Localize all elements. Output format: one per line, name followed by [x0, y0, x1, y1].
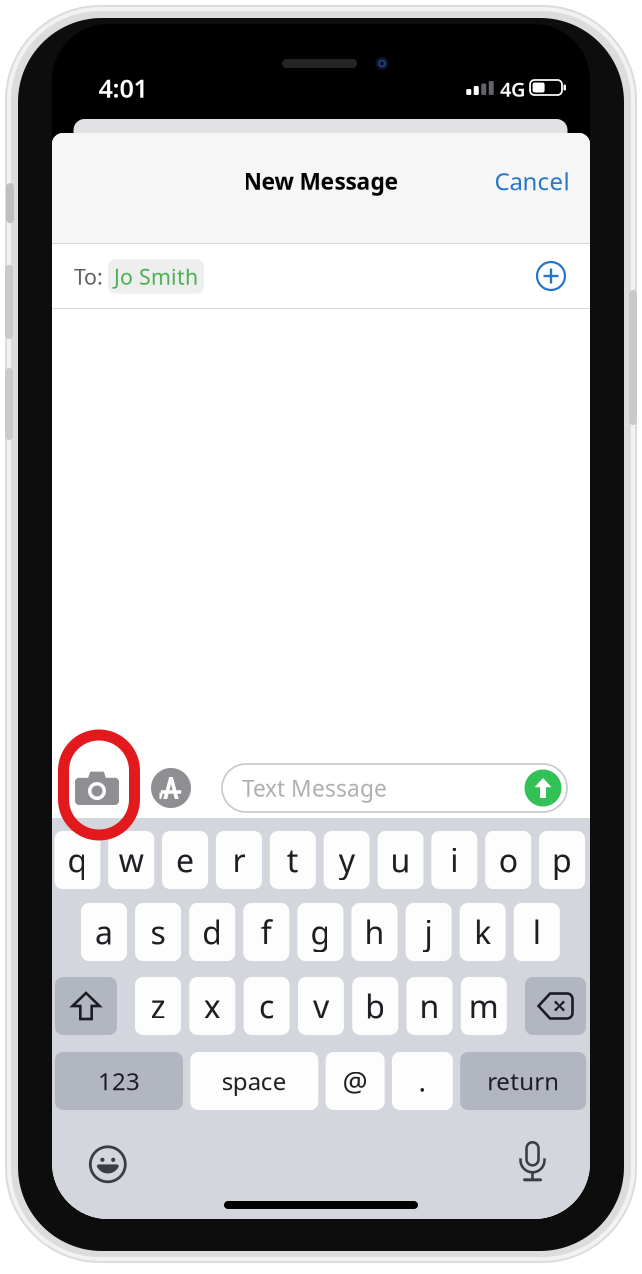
button[interactable]: Emoji keyboard — [82, 1138, 134, 1190]
button[interactable]: o — [485, 831, 531, 889]
button[interactable]: Delete — [525, 977, 586, 1035]
button[interactable]: z — [135, 977, 181, 1035]
button[interactable]: Dictation — [506, 1138, 558, 1190]
staticText: q — [67, 839, 87, 881]
button[interactable]: m — [461, 977, 507, 1035]
staticText: o — [499, 839, 518, 881]
button[interactable]: return — [460, 1052, 586, 1110]
button[interactable]: f — [243, 903, 289, 961]
button[interactable]: a — [81, 903, 127, 961]
button[interactable]: q — [54, 831, 100, 889]
staticText: x — [204, 985, 221, 1027]
button[interactable]: x — [189, 977, 235, 1035]
button[interactable]: k — [460, 903, 506, 961]
button[interactable]: Add contact — [525, 250, 577, 302]
staticText: return — [487, 1065, 559, 1097]
button[interactable]: s — [135, 903, 181, 961]
staticText: New Message — [243, 166, 398, 196]
button[interactable]: b — [352, 977, 398, 1035]
button[interactable]: e — [162, 831, 208, 889]
staticText: h — [364, 911, 384, 953]
staticText: p — [552, 839, 572, 881]
staticText: Cancel — [494, 165, 569, 197]
staticText: v — [313, 985, 329, 1027]
button[interactable]: r — [216, 831, 262, 889]
staticText: z — [150, 985, 165, 1027]
button[interactable]: . — [392, 1052, 453, 1110]
staticText: e — [176, 839, 194, 881]
button[interactable]: Camera — [67, 760, 127, 816]
staticText: f — [261, 911, 272, 953]
button[interactable]: 123 — [55, 1052, 183, 1110]
staticText: 123 — [98, 1065, 140, 1097]
staticText: n — [419, 985, 439, 1027]
staticText: g — [310, 911, 330, 953]
staticText: c — [259, 985, 274, 1027]
staticText: t — [287, 839, 299, 881]
staticText: 4:01 — [98, 71, 147, 105]
button[interactable]: Shift — [55, 977, 117, 1035]
button[interactable]: h — [351, 903, 397, 961]
staticText: . — [418, 1062, 426, 1100]
staticText: i — [450, 839, 458, 881]
button[interactable]: Send — [520, 765, 566, 811]
staticText: To: — [74, 262, 103, 291]
button[interactable]: space — [190, 1052, 318, 1110]
staticText: b — [365, 985, 385, 1027]
staticText: Jo Smith — [114, 262, 198, 291]
button[interactable]: y — [324, 831, 370, 889]
staticText: l — [533, 911, 541, 953]
button[interactable]: p — [539, 831, 585, 889]
button[interactable]: j — [406, 903, 452, 961]
staticText: r — [232, 839, 245, 881]
button[interactable]: l — [514, 903, 560, 961]
button[interactable]: i — [431, 831, 477, 889]
staticText: u — [390, 839, 410, 881]
staticText: y — [339, 839, 355, 881]
staticText: d — [202, 911, 222, 953]
staticText: k — [474, 911, 491, 953]
staticText: w — [119, 839, 144, 881]
staticText: @ — [343, 1062, 368, 1100]
staticText: j — [425, 911, 433, 953]
staticText: a — [95, 911, 113, 953]
staticText: 4G — [500, 76, 526, 102]
staticText: s — [151, 911, 166, 953]
button[interactable]: v — [298, 977, 344, 1035]
button[interactable]: d — [189, 903, 235, 961]
button[interactable]: @ — [326, 1052, 385, 1110]
button[interactable]: Cancel — [477, 154, 587, 208]
staticText: Text Message — [242, 773, 387, 803]
button[interactable]: App Store — [145, 762, 197, 814]
button[interactable]: c — [244, 977, 290, 1035]
staticText: space — [222, 1065, 287, 1097]
button[interactable]: n — [406, 977, 452, 1035]
button[interactable]: t — [270, 831, 316, 889]
button[interactable]: g — [297, 903, 343, 961]
staticText: m — [469, 985, 499, 1027]
button[interactable]: u — [377, 831, 423, 889]
button[interactable]: w — [108, 831, 154, 889]
